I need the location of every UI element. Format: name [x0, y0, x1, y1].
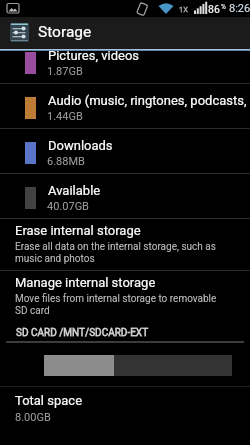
staticText: % [221, 3, 226, 11]
staticText: Erase all data on the internal storage, … [15, 241, 216, 265]
staticText: Audio (music, ringtones, podcasts, and m… [48, 93, 250, 108]
staticText: Move files from internal storage to remo… [15, 293, 217, 317]
staticText: Downloads [48, 138, 113, 153]
button[interactable]: Pictures, videos [0, 38, 250, 83]
staticText: 1.87GB [47, 65, 83, 78]
staticText: Available [48, 183, 101, 198]
staticText: 40.07GB [47, 200, 89, 213]
button[interactable]: Erase internal storage [0, 218, 250, 270]
staticText: 1X [179, 5, 188, 14]
button[interactable]: Audio (music, ringtones, podcasts, and m… [0, 83, 250, 128]
button[interactable]: Available [0, 173, 250, 218]
staticText: Manage internal storage [15, 275, 156, 290]
button[interactable]: Total space [0, 387, 250, 432]
staticText: SD CARD /MNT/SDCARD-EXT [16, 327, 149, 339]
staticText: 1.44GB [47, 110, 83, 123]
staticText: Storage [38, 23, 92, 41]
staticText: 6.88MB [47, 155, 85, 168]
button[interactable]: Downloads [0, 128, 250, 173]
staticText: 8.00GB [15, 411, 51, 424]
staticText: 8:26 [229, 2, 250, 15]
staticText: Pictures, videos [48, 48, 140, 63]
staticText: Erase internal storage [15, 223, 141, 238]
staticText: 86 [208, 3, 220, 15]
staticText: Total space [15, 393, 83, 408]
button[interactable]: Manage internal storage [0, 270, 250, 322]
